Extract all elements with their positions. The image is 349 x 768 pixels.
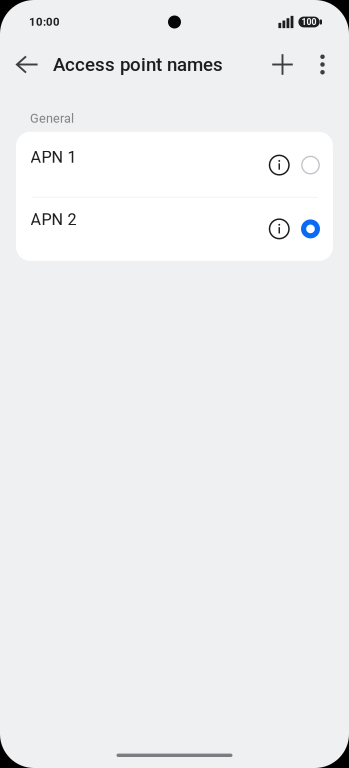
staticText: General xyxy=(30,111,74,126)
staticText: 10:00 xyxy=(29,15,60,29)
staticText: APN 1 xyxy=(30,148,76,167)
staticText: APN 2 xyxy=(30,210,76,229)
button[interactable]: Add APN xyxy=(262,44,302,84)
button[interactable]: Back xyxy=(8,44,46,84)
button[interactable]: More options xyxy=(302,44,342,84)
staticText: 100 xyxy=(301,17,316,27)
staticText: Access point names xyxy=(53,54,223,75)
button[interactable]: APN 2 xyxy=(16,198,333,261)
button[interactable]: APN 1 xyxy=(16,132,333,197)
